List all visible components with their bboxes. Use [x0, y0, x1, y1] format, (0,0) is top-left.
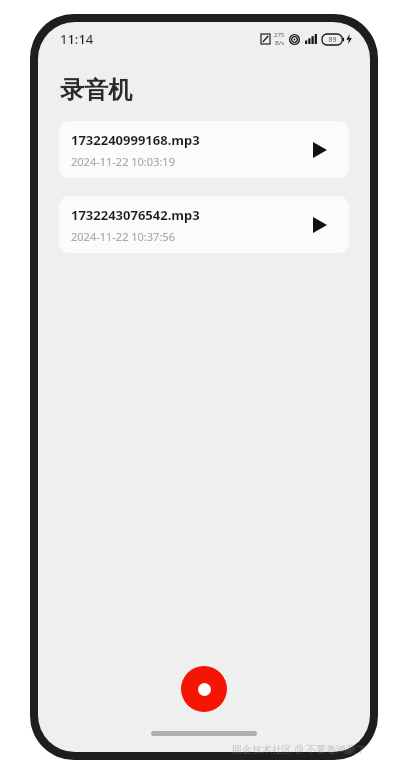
- staticText: 11:14: [60, 30, 94, 48]
- staticText: 275: [274, 31, 285, 39]
- button[interactable]: Play: [307, 212, 333, 238]
- staticText: 1732240999168.mp3: [71, 131, 200, 149]
- staticText: B/s: [275, 39, 285, 47]
- button[interactable]: 1732240999168.mp3: [59, 121, 349, 178]
- staticText: 录音机: [60, 75, 132, 105]
- staticText: 89: [328, 35, 337, 45]
- button[interactable]: Record: [181, 666, 227, 712]
- button[interactable]: 1732243076542.mp3: [59, 196, 349, 253]
- staticText: 2024-11-22 10:37:56: [71, 229, 175, 244]
- button[interactable]: Play: [307, 137, 333, 163]
- staticText: 掘金技术社区 @ 不要卷鸿蒙了: [232, 742, 367, 756]
- staticText: 2024-11-22 10:03:19: [71, 154, 175, 169]
- staticText: 1732243076542.mp3: [71, 206, 200, 224]
